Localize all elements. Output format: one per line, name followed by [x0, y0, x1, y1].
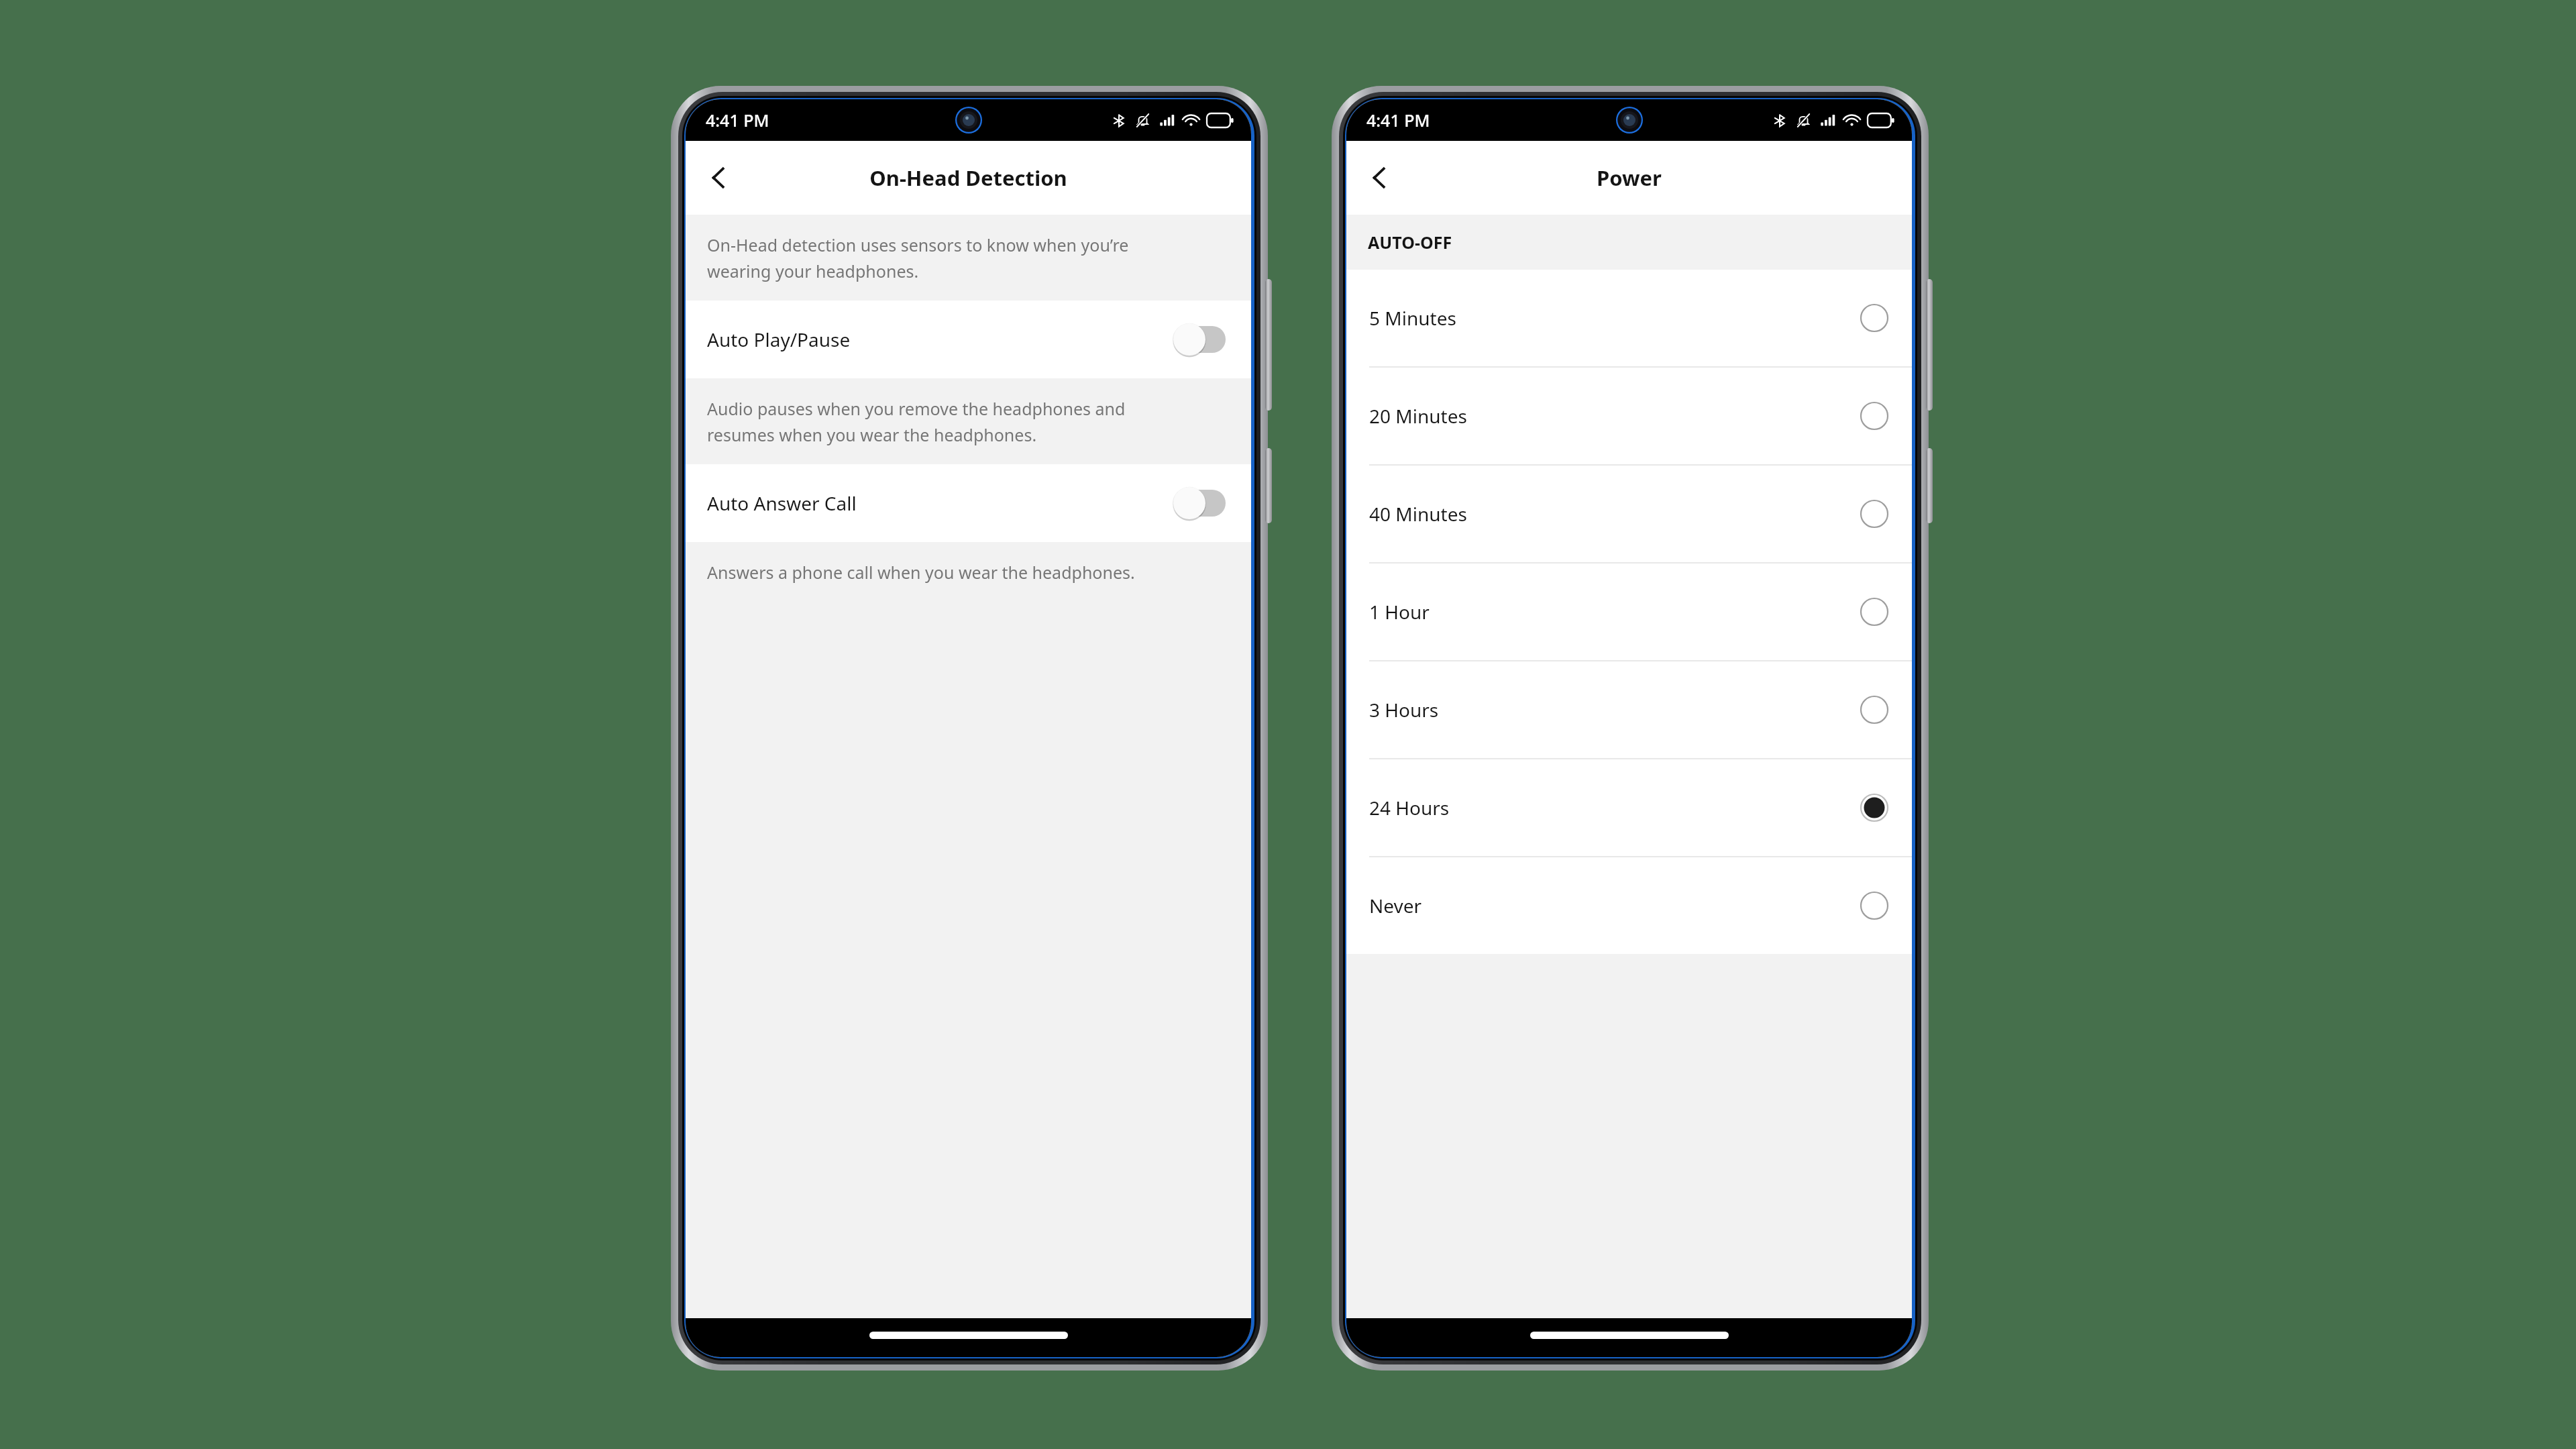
staticText: 1 Hour: [1369, 599, 1860, 625]
staticText: Auto Play/Pause: [707, 327, 1172, 352]
button[interactable]: Auto Play/Pause: [686, 301, 1251, 378]
staticText: 3 Hours: [1369, 697, 1860, 722]
button[interactable]: 20 Minutes: [1346, 368, 1912, 466]
button[interactable]: Never: [1346, 857, 1912, 954]
button[interactable]: Back: [1354, 153, 1404, 203]
button[interactable]: 1 Hour: [1346, 563, 1912, 661]
button[interactable]: Back: [694, 153, 743, 203]
staticText: 20 Minutes: [1369, 403, 1860, 429]
button[interactable]: Auto Answer Call: [686, 464, 1251, 542]
staticText: 24 Hours: [1369, 795, 1860, 820]
staticText: 5 Minutes: [1369, 305, 1860, 331]
staticText: 4:41 PM: [706, 109, 769, 131]
staticText: 4:41 PM: [1366, 109, 1430, 131]
staticText: Never: [1369, 893, 1860, 918]
staticText: On-Head detection uses sensors to know w…: [707, 233, 1129, 283]
button[interactable]: 3 Hours: [1346, 661, 1912, 759]
button[interactable]: 5 Minutes: [1346, 270, 1912, 368]
staticText: Answers a phone call when you wear the h…: [707, 561, 1135, 584]
staticText: Power: [1597, 164, 1662, 192]
staticText: AUTO-OFF: [1368, 231, 1452, 254]
staticText: On-Head Detection: [869, 164, 1067, 192]
button[interactable]: 24 Hours: [1346, 759, 1912, 857]
staticText: Auto Answer Call: [707, 490, 1172, 516]
button[interactable]: 40 Minutes: [1346, 466, 1912, 563]
staticText: 40 Minutes: [1369, 501, 1860, 527]
staticText: Audio pauses when you remove the headpho…: [707, 397, 1126, 447]
